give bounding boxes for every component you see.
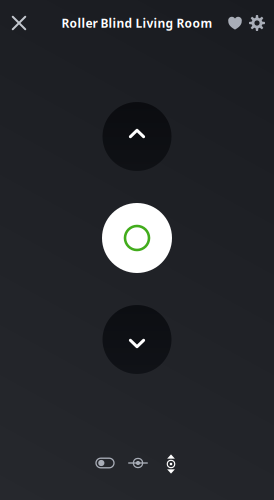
- button[interactable]: Up down mode: [154, 444, 187, 482]
- staticText: Roller Blind Living Room: [61, 15, 212, 31]
- button[interactable]: Settings: [246, 0, 268, 46]
- button[interactable]: Toggle mode: [88, 444, 121, 482]
- button[interactable]: Stop blind: [102, 203, 172, 273]
- button[interactable]: Close: [0, 0, 38, 46]
- button[interactable]: Close blind: [102, 305, 171, 374]
- button[interactable]: Slider mode: [121, 444, 154, 482]
- button[interactable]: Open blind: [102, 102, 171, 171]
- button[interactable]: Favourite: [224, 0, 246, 46]
